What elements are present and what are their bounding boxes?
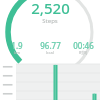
staticText: 1.9 — [11, 40, 23, 51]
staticText: 00:46 — [73, 40, 94, 51]
button[interactable]: Activity chart — [0, 60, 100, 100]
staticText: Steps — [42, 17, 58, 25]
staticText: 2,520 — [31, 0, 70, 18]
button[interactable]: 00:46 — [67, 40, 99, 56]
staticText: 时间 — [79, 50, 87, 55]
button[interactable]: 1.9 — [1, 40, 33, 56]
staticText: kcal — [46, 50, 54, 55]
staticText: km — [14, 50, 20, 55]
button[interactable]: 96.77 — [34, 40, 66, 56]
staticText: 96.77 — [40, 40, 61, 51]
button[interactable]: Step goal progress — [0, 0, 100, 38]
